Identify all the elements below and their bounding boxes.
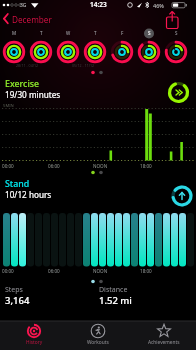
- staticText: Stand: [5, 178, 30, 190]
- staticText: 00:00: [2, 163, 14, 169]
- staticText: Exercise: [5, 78, 40, 90]
- button[interactable]: [66, 321, 130, 350]
- staticText: M: [12, 30, 17, 36]
- staticText: 3G: [20, 2, 27, 9]
- staticText: 14:23: [90, 0, 107, 9]
- staticText: 18:00: [140, 163, 152, 169]
- staticText: Steps: [5, 285, 23, 295]
- staticText: 46%: [153, 2, 164, 9]
- staticText: Achievements: [148, 339, 180, 346]
- staticText: Distance: [99, 285, 128, 295]
- button[interactable]: S: [139, 28, 159, 68]
- staticText: 00:00: [2, 268, 14, 274]
- button[interactable]: [0, 285, 98, 315]
- staticText: S: [175, 30, 178, 36]
- button[interactable]: [130, 321, 194, 350]
- button[interactable]: S: [166, 28, 186, 68]
- staticText: T: [94, 30, 97, 36]
- staticText: 06:00: [48, 163, 60, 169]
- staticText: 19/30 minutes: [5, 89, 61, 100]
- staticText: 05/12 - 11/12: [72, 63, 95, 68]
- button[interactable]: F: [112, 28, 132, 68]
- button[interactable]: [0, 178, 196, 278]
- button[interactable]: [0, 78, 196, 176]
- staticText: 10/12 hours: [5, 189, 52, 200]
- staticText: 06:00: [48, 268, 60, 274]
- button[interactable]: [160, 10, 184, 32]
- staticText: December: [12, 14, 52, 25]
- button[interactable]: T: [31, 28, 51, 68]
- staticText: Workouts: [87, 339, 109, 346]
- staticText: S: [148, 30, 151, 36]
- staticText: NOON: [93, 163, 108, 169]
- button[interactable]: December: [0, 10, 70, 28]
- staticText: 5MIN: [3, 103, 14, 109]
- staticText: T: [40, 30, 43, 36]
- button[interactable]: T: [85, 28, 105, 68]
- button[interactable]: M: [4, 28, 24, 68]
- staticText: 3,164: [5, 294, 30, 307]
- button[interactable]: W: [58, 28, 78, 68]
- button[interactable]: [2, 321, 66, 350]
- staticText: 18:00: [140, 268, 152, 274]
- button[interactable]: [98, 285, 196, 315]
- staticText: W: [66, 30, 71, 36]
- staticText: 28/11 - 04/12: [16, 63, 39, 68]
- staticText: History: [26, 339, 43, 346]
- staticText: NOON: [93, 268, 108, 274]
- staticText: F: [121, 30, 124, 36]
- staticText: 1.52 mi: [99, 294, 132, 307]
